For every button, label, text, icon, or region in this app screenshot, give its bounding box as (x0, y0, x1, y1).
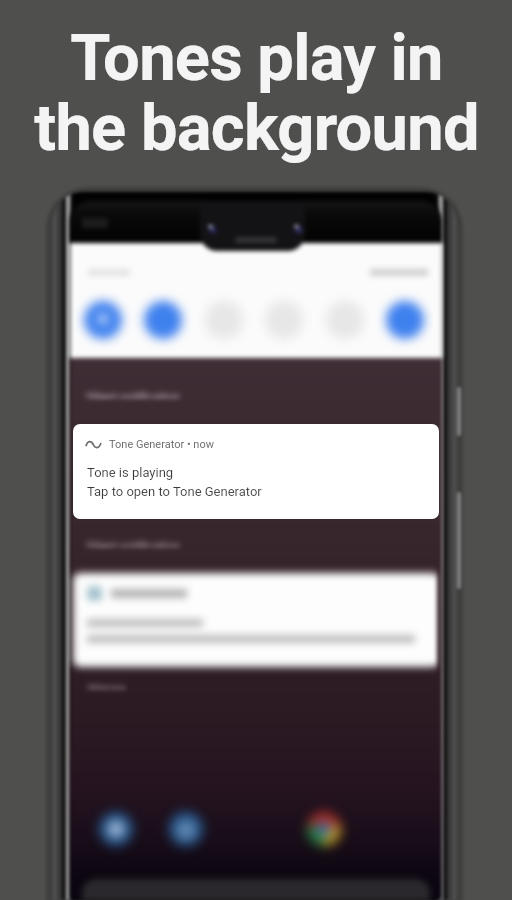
staticText: Tone Generator • now (109, 438, 214, 451)
button[interactable] (252, 288, 316, 352)
button[interactable] (313, 288, 377, 352)
staticText: the background (34, 90, 479, 166)
button[interactable] (131, 288, 195, 352)
button[interactable]: Messages (169, 812, 203, 846)
staticText: Silent notifications (86, 391, 181, 399)
button[interactable]: Tone Generator • now (73, 424, 439, 519)
button[interactable] (192, 288, 256, 352)
button[interactable] (71, 288, 135, 352)
button[interactable] (373, 288, 437, 352)
staticText: Tone is playing (87, 465, 174, 480)
button[interactable]: Phone (99, 812, 133, 846)
staticText: Silent notifications (86, 540, 181, 548)
button[interactable] (73, 573, 437, 667)
staticText: Manage (88, 682, 126, 690)
button[interactable]: Chrome (307, 812, 341, 846)
staticText: Tap to open to Tone Generator (87, 484, 262, 499)
staticText: Tones play in (70, 20, 443, 96)
